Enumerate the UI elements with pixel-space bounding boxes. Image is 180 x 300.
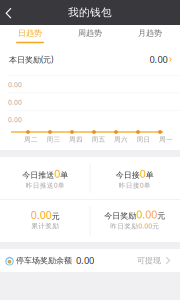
staticText: 月趋势 [138, 28, 162, 38]
staticText: 元 [157, 211, 165, 221]
staticText: 昨日接0单 [119, 181, 151, 190]
staticText: 周一 [159, 135, 173, 144]
button[interactable]: 今日推送 [1, 157, 90, 199]
staticText: 单 [146, 170, 154, 180]
staticText: 可提现 [137, 256, 161, 265]
staticText: 今日接 [116, 170, 140, 180]
staticText: 今日奖励 [104, 211, 136, 221]
staticText: 0.00 [31, 208, 52, 222]
staticText: 今日推送 [22, 170, 54, 180]
staticText: 周四 [69, 135, 83, 144]
staticText: 周六 [114, 135, 128, 144]
staticText: 0.00 [76, 254, 94, 267]
button[interactable]: 周趋势 [60, 25, 120, 44]
staticText: 周五 [91, 135, 105, 144]
staticText: 周三 [46, 135, 60, 144]
staticText: 停车场奖励余额 [16, 256, 72, 265]
button[interactable]: 今日接 [90, 157, 179, 199]
staticText: 0.00 [8, 80, 22, 89]
button[interactable]: 0.00 [150, 53, 172, 66]
staticText: 日趋势 [18, 28, 42, 38]
staticText: 周日 [136, 135, 150, 144]
button[interactable]: 月趋势 [120, 25, 180, 44]
staticText: 我的钱包 [68, 6, 112, 19]
staticText: 元 [52, 211, 60, 221]
staticText: 0.00 [8, 98, 22, 107]
button[interactable]: 今日奖励 [90, 200, 179, 242]
staticText: 单 [60, 170, 68, 180]
button[interactable]: 停车场奖励余额 [0, 249, 180, 272]
staticText: 昨日推送0单 [26, 181, 65, 190]
staticText: 昨日奖励0.00元 [110, 221, 159, 230]
staticText: 本日奖励(元) [9, 54, 53, 65]
button[interactable]: Back [0, 0, 22, 25]
staticText: 周二 [24, 135, 38, 144]
staticText: 0 [54, 167, 60, 181]
staticText: 0.00 [136, 207, 157, 221]
button[interactable]: 日趋势 [0, 25, 60, 44]
staticText: 周趋势 [78, 28, 102, 38]
staticText: 0.00 [8, 115, 22, 124]
staticText: 0 [140, 167, 146, 181]
staticText: 0.00 [150, 53, 168, 66]
button[interactable]: 0.00 [1, 200, 90, 242]
staticText: 累计奖励 [31, 222, 59, 230]
